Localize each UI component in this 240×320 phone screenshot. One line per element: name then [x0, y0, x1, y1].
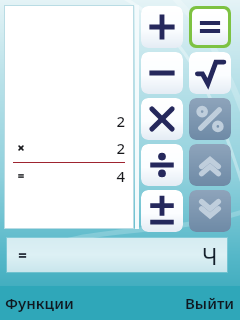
button[interactable]: Equals [189, 6, 231, 48]
button[interactable]: Plus [141, 6, 183, 48]
button[interactable]: Square root [189, 52, 231, 94]
button[interactable]: Multiply [141, 98, 183, 140]
staticText: Выйти [185, 293, 235, 313]
staticText: 2 [29, 138, 125, 158]
staticText: 4 [29, 166, 125, 186]
staticText: Ч [202, 240, 218, 271]
staticText: 2 [29, 111, 125, 131]
button[interactable]: Выйти [183, 289, 237, 317]
button[interactable]: Ч [7, 238, 227, 272]
button: Percent [189, 98, 231, 140]
button[interactable]: Функции [3, 289, 76, 317]
button[interactable]: Change sign [141, 190, 183, 232]
button[interactable]: Divide [141, 144, 183, 186]
button[interactable]: Minus [141, 52, 183, 94]
button: Scroll down [189, 190, 231, 232]
staticText: Функции [5, 293, 74, 313]
button[interactable]: 2 [5, 6, 133, 228]
button: Scroll up [189, 144, 231, 186]
